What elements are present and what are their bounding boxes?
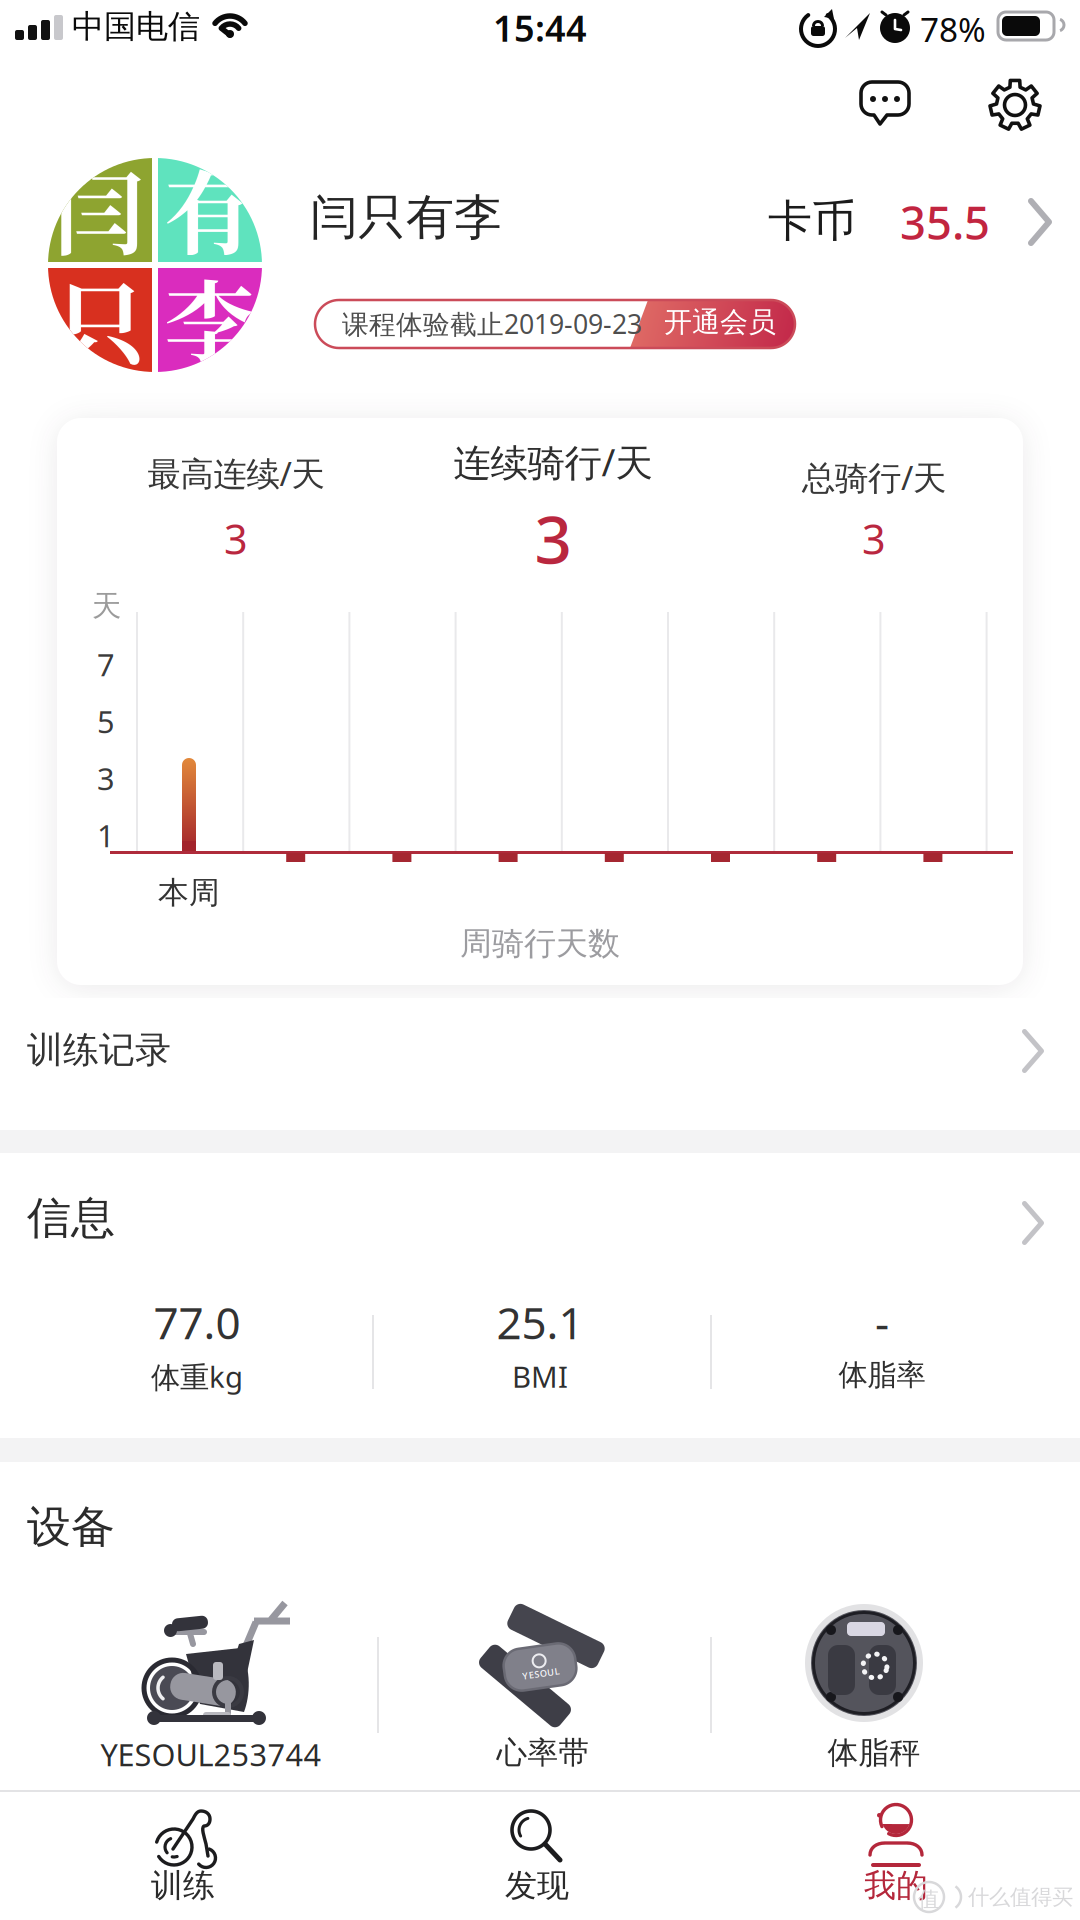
button[interactable]: 体脂秤 [709, 1600, 1039, 1784]
staticText: 77.0 [153, 1293, 240, 1351]
staticText: 李 [164, 253, 255, 383]
staticText: 体脂秤 [827, 1734, 920, 1772]
button[interactable]: 客服消息 [0, 0, 54, 48]
staticText: 7 [97, 644, 115, 685]
staticText: 78% [920, 7, 986, 51]
staticText: 3 [534, 495, 571, 582]
staticText: - [875, 1293, 889, 1351]
staticText: YESOUL [521, 1667, 559, 1680]
staticText: 值 [918, 1886, 939, 1912]
button[interactable]: 发现 [417, 1792, 657, 1920]
staticText: 3 [97, 758, 115, 799]
staticText: 3 [862, 511, 886, 566]
staticText: 1 [97, 815, 115, 856]
button[interactable]: 训练记录 [0, 998, 1080, 1130]
staticText: 训练记录 [27, 1028, 171, 1072]
staticText: 什么值得买 [968, 1884, 1073, 1910]
staticText: 我的 [864, 1866, 928, 1905]
staticText: 总骑行/天 [802, 455, 946, 499]
staticText: 卡币 [768, 194, 856, 248]
staticText: 天 [92, 588, 121, 624]
staticText: 本周 [158, 874, 220, 912]
button[interactable]: 我的 [776, 1792, 1016, 1920]
button[interactable]: 闫 [0, 0, 560, 260]
staticText: YESOUL253744 [100, 1734, 321, 1775]
staticText: 体脂率 [838, 1357, 925, 1393]
staticText: 闫 [54, 143, 145, 273]
button[interactable]: 训练 [63, 1792, 303, 1920]
staticText: 最高连续/天 [147, 451, 324, 495]
staticText: 心率带 [496, 1734, 589, 1772]
staticText: 发现 [505, 1866, 569, 1905]
button[interactable]: 设置 [0, 0, 54, 54]
staticText: 信息 [27, 1191, 115, 1245]
staticText: 训练 [151, 1866, 215, 1905]
staticText: 开通会员 [664, 305, 776, 339]
staticText: 35.5 [900, 192, 990, 252]
button[interactable]: YESOUL253744 [16, 1600, 406, 1784]
button[interactable]: YESOUL [378, 1600, 708, 1784]
staticText: 有 [164, 143, 255, 273]
staticText: 连续骑行/天 [453, 437, 652, 487]
staticText: 周骑行天数 [460, 924, 620, 963]
button[interactable]: 课程体验截止2019-09-23 [315, 300, 795, 348]
staticText: 25.1 [496, 1293, 583, 1351]
staticText: 设备 [27, 1500, 115, 1554]
staticText: 3 [224, 511, 248, 566]
staticText: 体重kg [151, 1357, 243, 1396]
staticText: 闫只有李 [310, 188, 502, 247]
button[interactable]: 信息 [0, 1153, 1080, 1438]
staticText: 中国电信 [72, 7, 200, 46]
button[interactable]: 卡币 [768, 192, 1058, 252]
staticText: BMI [512, 1357, 568, 1396]
staticText: 课程体验截止2019-09-23 [342, 306, 642, 341]
staticText: 15:44 [493, 4, 587, 52]
staticText: 5 [97, 701, 115, 742]
staticText: 只 [54, 253, 145, 383]
